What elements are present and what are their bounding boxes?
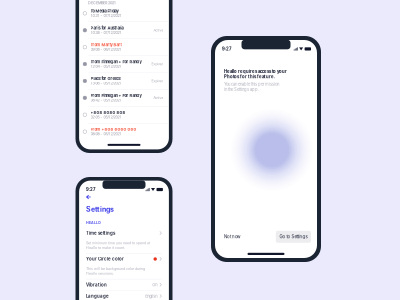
staticText: 10:31 - 07/12/2021 [91,13,122,18]
staticText: To Media Friday [91,9,119,13]
staticText: Go to Settings [279,234,307,239]
button[interactable]: Language [79,291,169,300]
staticText: From Finnegan + For Randy [91,93,142,98]
staticText: Heallo requires access to your [224,69,287,74]
staticText: Settings [86,205,114,213]
button[interactable]: Not now [222,231,242,243]
staticText: 08:42 - 05/12/2021 [91,98,122,102]
staticText: You can enable this permission [224,82,279,87]
staticText: Set minimum time you need to spend at [86,241,150,245]
staticText: Photos for this feature. [224,74,275,79]
staticText: Active [153,28,163,32]
staticText: DECEMBER 2021 [88,1,116,5]
staticText: Time settings [86,230,115,236]
staticText: HEALLO [86,220,101,225]
staticText: in the Settings app. [224,87,259,92]
button[interactable]: From Marty Bart [79,39,169,55]
button[interactable]: Paris for Australia [79,22,169,38]
staticText: Language [86,293,109,299]
button[interactable]: From +808 8080 080 [79,123,169,140]
button[interactable]: Back [79,193,91,199]
staticText: 9:27 [86,187,95,192]
button[interactable]: Time settings [79,228,169,253]
staticText: 9:27 [222,46,231,51]
staticText: English [145,294,157,299]
button[interactable]: Vibration [79,279,169,290]
staticText: Expired [151,79,163,83]
staticText: 09:08 - 06/12/2021 [91,47,122,52]
staticText: +808 8080 808 [91,110,126,115]
staticText: 13:06 - 05/12/2021 [91,81,122,85]
button[interactable]: From Finnegan + For Randy [79,56,169,72]
staticText: On [152,282,157,287]
button[interactable]: +808 8080 808 [79,106,169,123]
staticText: Heallo sessions. [86,271,114,276]
staticText: Vibration [86,282,107,287]
staticText: From Marty Bart [91,42,122,47]
staticText: 08:08 - 05/12/2021 [91,132,122,136]
button[interactable]: From Finnegan + For Randy [79,90,169,106]
staticText: From Finnegan + For Randy [91,59,142,64]
staticText: This will be background color during [86,266,145,271]
button[interactable]: Go to Settings [276,231,311,243]
button[interactable]: Place for Greece [79,73,169,89]
staticText: Your Circle color [86,256,124,262]
staticText: 02:05 - 05/12/2021 [91,115,122,119]
staticText: Not now [224,234,240,239]
staticText: From +808 8080 080 [91,127,137,132]
staticText: Paris for Australia [91,25,124,30]
staticText: Heallo to make it count. [86,245,125,250]
button[interactable]: Your Circle color [79,253,169,279]
staticText: Expired [151,62,163,66]
staticText: 10:38 - 07/12/2021 [91,30,122,35]
staticText: Active [153,96,163,100]
button[interactable]: To Media Friday [79,5,169,22]
staticText: 12:04 - 05/12/2021 [91,64,122,69]
staticText: Place for Greece [91,76,121,81]
